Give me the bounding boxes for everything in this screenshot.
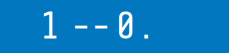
staticText: 1 [40,5,60,48]
staticText: -- [71,5,111,48]
staticText: . [136,5,156,48]
staticText: 0 [115,5,135,48]
